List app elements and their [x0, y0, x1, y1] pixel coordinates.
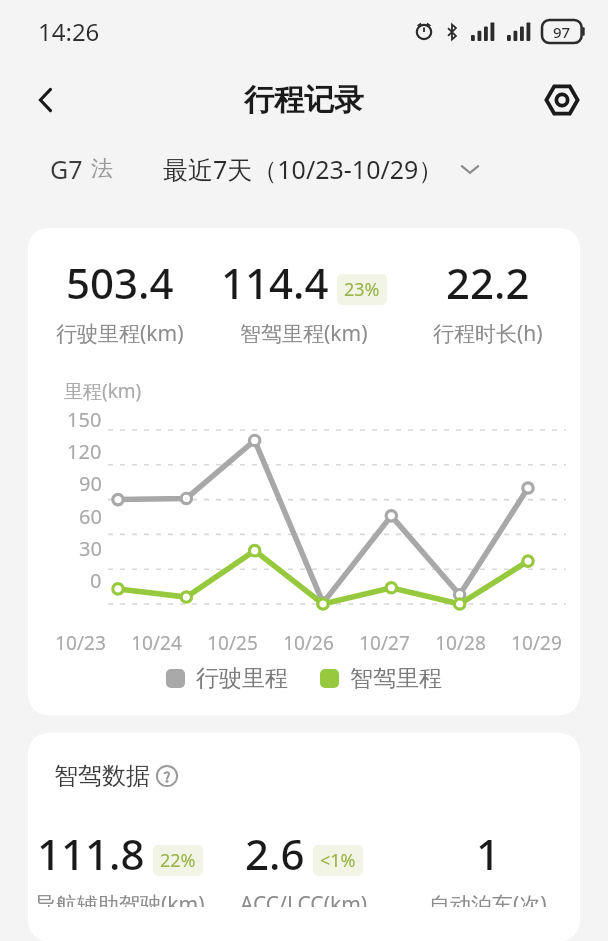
- staticText: 行程记录: [244, 81, 364, 119]
- staticText: 150: [67, 406, 102, 433]
- staticText: 97: [553, 22, 571, 42]
- staticText: 30: [79, 535, 102, 562]
- staticText: 22.2: [446, 254, 530, 311]
- button[interactable]: 智驾里程: [320, 664, 442, 693]
- staticText: 10/27: [359, 630, 410, 656]
- staticText: 10/25: [207, 630, 258, 656]
- staticText: 60: [79, 503, 102, 530]
- other: Help: [156, 765, 178, 787]
- staticText: 2.6: [245, 825, 305, 882]
- staticText: 10/26: [283, 630, 334, 656]
- staticText: 120: [67, 438, 102, 465]
- button[interactable]: 智驾数据: [54, 761, 178, 791]
- staticText: 114.4: [221, 254, 329, 311]
- staticText: 行驶里程(km): [56, 319, 184, 348]
- staticText: 行驶里程: [196, 664, 288, 693]
- staticText: 0: [90, 567, 102, 594]
- button[interactable]: Settings: [536, 74, 588, 126]
- staticText: 自动泊车(次): [429, 890, 547, 907]
- button[interactable]: Back: [20, 74, 72, 126]
- staticText: 10/29: [511, 630, 562, 656]
- staticText: G7: [50, 152, 83, 186]
- staticText: 23%: [344, 277, 380, 302]
- staticText: 503.4: [66, 254, 174, 311]
- staticText: 行程时长(h): [433, 319, 543, 348]
- staticText: 里程(km): [64, 378, 142, 404]
- button[interactable]: G7: [50, 152, 113, 186]
- staticText: 最近7天（10/23-10/29）: [163, 152, 444, 186]
- staticText: 智驾里程: [350, 664, 442, 693]
- staticText: 10/28: [435, 630, 486, 656]
- staticText: 14:26: [38, 15, 100, 48]
- staticText: 智驾里程(km): [240, 319, 368, 348]
- staticText: 智驾数据: [54, 761, 150, 791]
- staticText: <1%: [320, 848, 356, 873]
- staticText: 1: [476, 825, 501, 882]
- staticText: 111.8: [37, 825, 145, 882]
- staticText: ACC/LCC(km): [240, 890, 368, 907]
- staticText: 10/24: [131, 630, 182, 656]
- staticText: 10/23: [55, 630, 106, 656]
- staticText: 法: [91, 155, 113, 183]
- staticText: 22%: [160, 848, 196, 873]
- staticText: 导航辅助驾驶(km): [35, 890, 205, 907]
- button[interactable]: 行驶里程: [166, 664, 288, 693]
- staticText: 90: [79, 470, 102, 497]
- button[interactable]: 最近7天（10/23-10/29）: [163, 152, 482, 186]
